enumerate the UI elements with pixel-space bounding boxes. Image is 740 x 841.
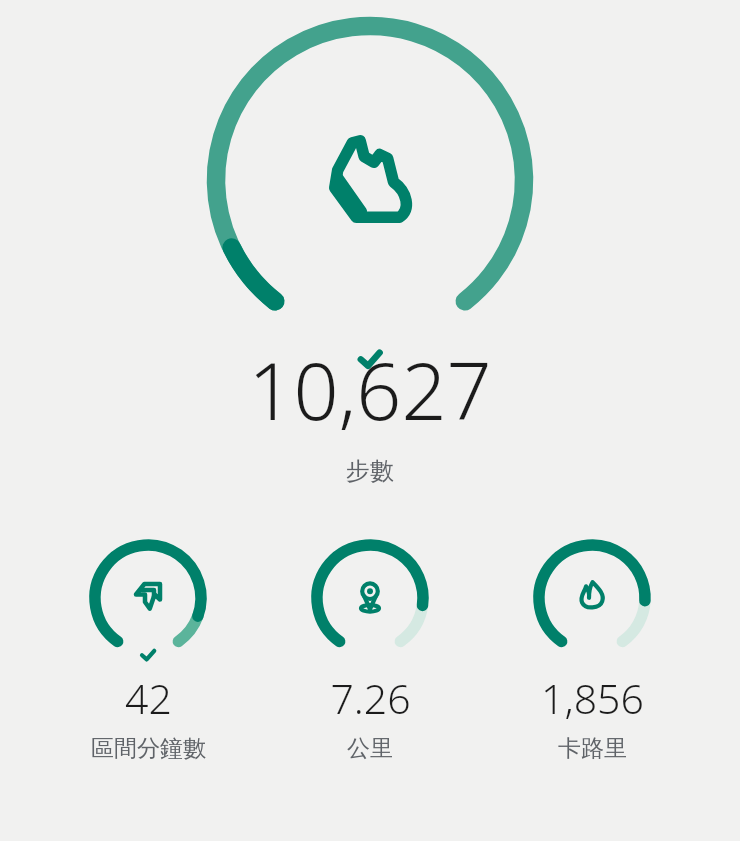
staticText: 7.26 xyxy=(330,670,411,726)
staticText: 公里 xyxy=(347,734,393,763)
button[interactable]: Steps 10,627 xyxy=(190,6,550,336)
staticText: 步數 xyxy=(346,456,394,486)
button[interactable]: Calories 1,856 xyxy=(518,528,666,763)
button[interactable]: Intensity minutes 42 xyxy=(74,528,222,763)
staticText: 10,627 xyxy=(248,336,492,444)
staticText: 卡路里 xyxy=(558,734,627,763)
staticText: 42 xyxy=(125,670,172,726)
staticText: 區間分鐘數 xyxy=(91,734,206,763)
staticText: 1,856 xyxy=(541,670,644,726)
button[interactable]: Distance 7.26 kilometres xyxy=(296,528,444,763)
